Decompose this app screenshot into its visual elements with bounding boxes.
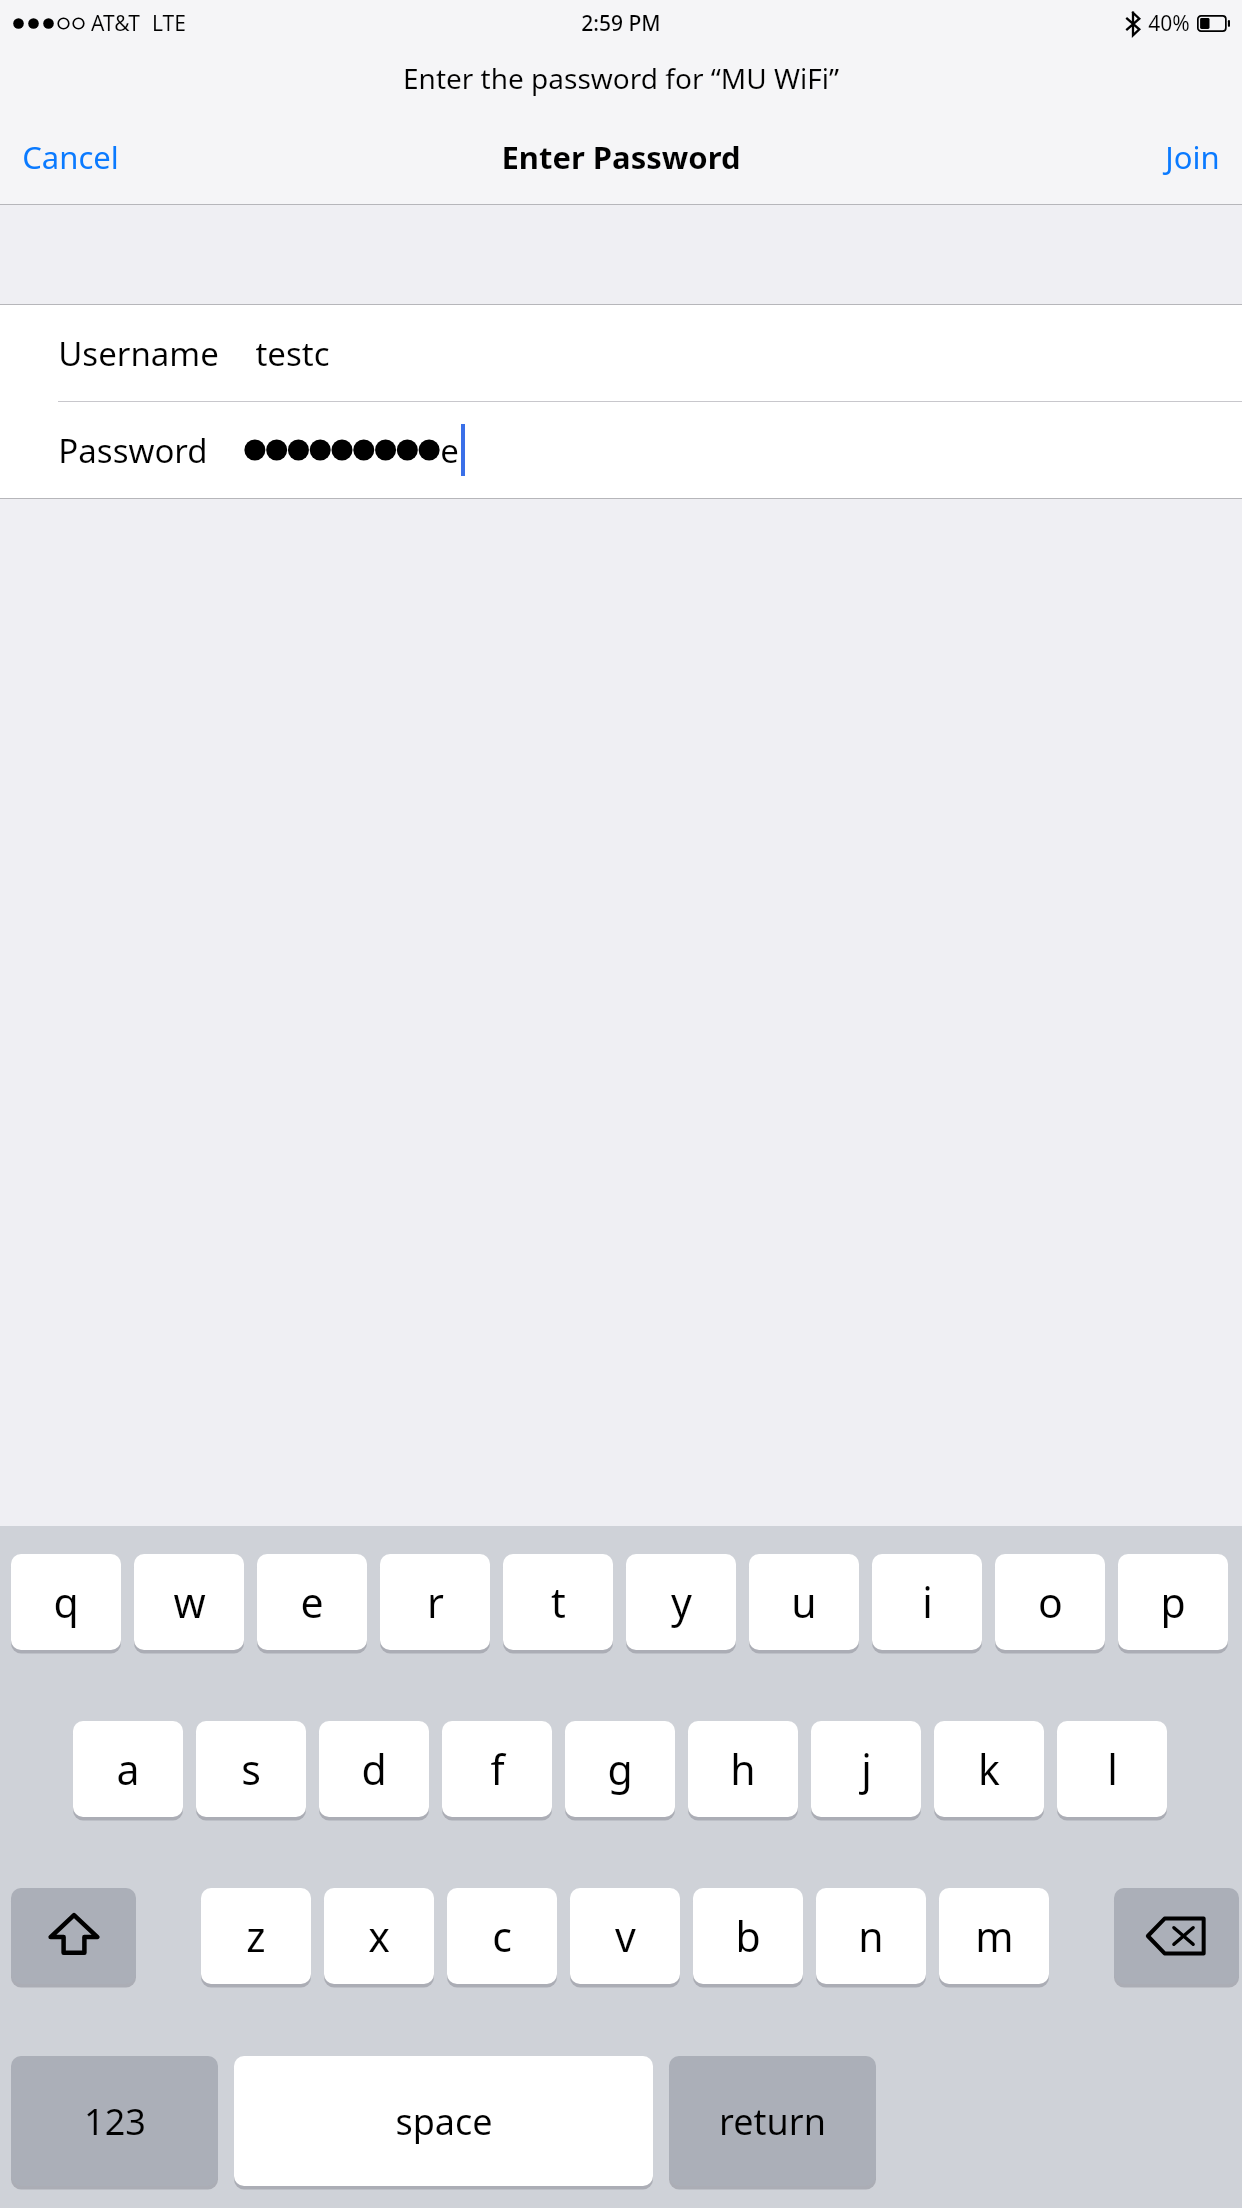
staticText: f [490,1741,505,1797]
staticText: e [300,1574,324,1630]
staticText: b [735,1908,761,1964]
staticText: space [395,2097,493,2146]
staticText: testc [255,331,330,376]
staticText: c [492,1908,512,1964]
staticText: i [922,1574,933,1630]
staticText: v [615,1908,636,1964]
button[interactable]: p [1118,1554,1228,1650]
button[interactable]: Cancel [0,122,141,192]
staticText: 123 [84,2097,146,2146]
staticText: k [978,1741,1000,1797]
staticText: Cancel [22,136,119,178]
button[interactable]: j [811,1721,921,1817]
staticText: o [1038,1574,1063,1630]
button[interactable]: k [934,1721,1044,1817]
button[interactable]: w [134,1554,244,1650]
staticText: u [791,1574,817,1630]
button[interactable]: y [626,1554,736,1650]
button[interactable]: u [749,1554,859,1650]
staticText: Username [58,331,219,376]
button[interactable]: v [570,1888,680,1984]
staticText: r [427,1574,444,1630]
staticText: 40% [1148,9,1190,38]
button[interactable]: z [201,1888,311,1984]
staticText: d [361,1741,387,1797]
button[interactable]: n [816,1888,926,1984]
button[interactable]: r [380,1554,490,1650]
button[interactable]: s [196,1721,306,1817]
staticText: g [607,1741,633,1797]
staticText: p [1160,1574,1186,1630]
staticText: m [975,1908,1014,1964]
button[interactable]: Delete [1114,1888,1239,1984]
staticText: n [858,1908,884,1964]
button[interactable]: i [872,1554,982,1650]
button[interactable]: Join [1143,122,1242,192]
staticText: Join [1165,136,1220,178]
button[interactable]: d [319,1721,429,1817]
staticText: t [551,1574,566,1630]
button[interactable]: f [442,1721,552,1817]
staticText: Enter the password for “MU WiFi” [403,59,839,97]
button[interactable]: x [324,1888,434,1984]
staticText: z [246,1908,266,1964]
staticText: y [671,1574,692,1630]
staticText: x [368,1908,390,1964]
button[interactable]: space [234,2056,653,2186]
staticText: AT&T [91,9,140,38]
button[interactable]: l [1057,1721,1167,1817]
button[interactable]: Password [0,402,1242,498]
staticText: return [719,2097,826,2146]
button[interactable]: c [447,1888,557,1984]
button[interactable]: a [73,1721,183,1817]
button[interactable]: q [11,1554,121,1650]
staticText: w [173,1574,206,1630]
button[interactable]: h [688,1721,798,1817]
staticText: h [730,1741,756,1797]
button[interactable]: return [669,2056,876,2186]
staticText: Enter Password [501,136,741,178]
button[interactable]: b [693,1888,803,1984]
staticText: e [440,428,459,473]
button[interactable]: 123 [11,2056,218,2186]
button[interactable]: t [503,1554,613,1650]
button[interactable]: o [995,1554,1105,1650]
staticText: a [116,1741,140,1797]
staticText: q [53,1574,79,1630]
button[interactable]: g [565,1721,675,1817]
staticText: LTE [152,9,186,38]
staticText: l [1107,1741,1118,1797]
staticText: Password [58,428,208,473]
staticText: j [861,1741,872,1797]
staticText: 2:59 PM [581,9,661,38]
button[interactable]: Username [0,305,1242,401]
button[interactable]: m [939,1888,1049,1984]
button[interactable]: Shift [11,1888,136,1984]
button[interactable]: e [257,1554,367,1650]
staticText: s [241,1741,261,1797]
